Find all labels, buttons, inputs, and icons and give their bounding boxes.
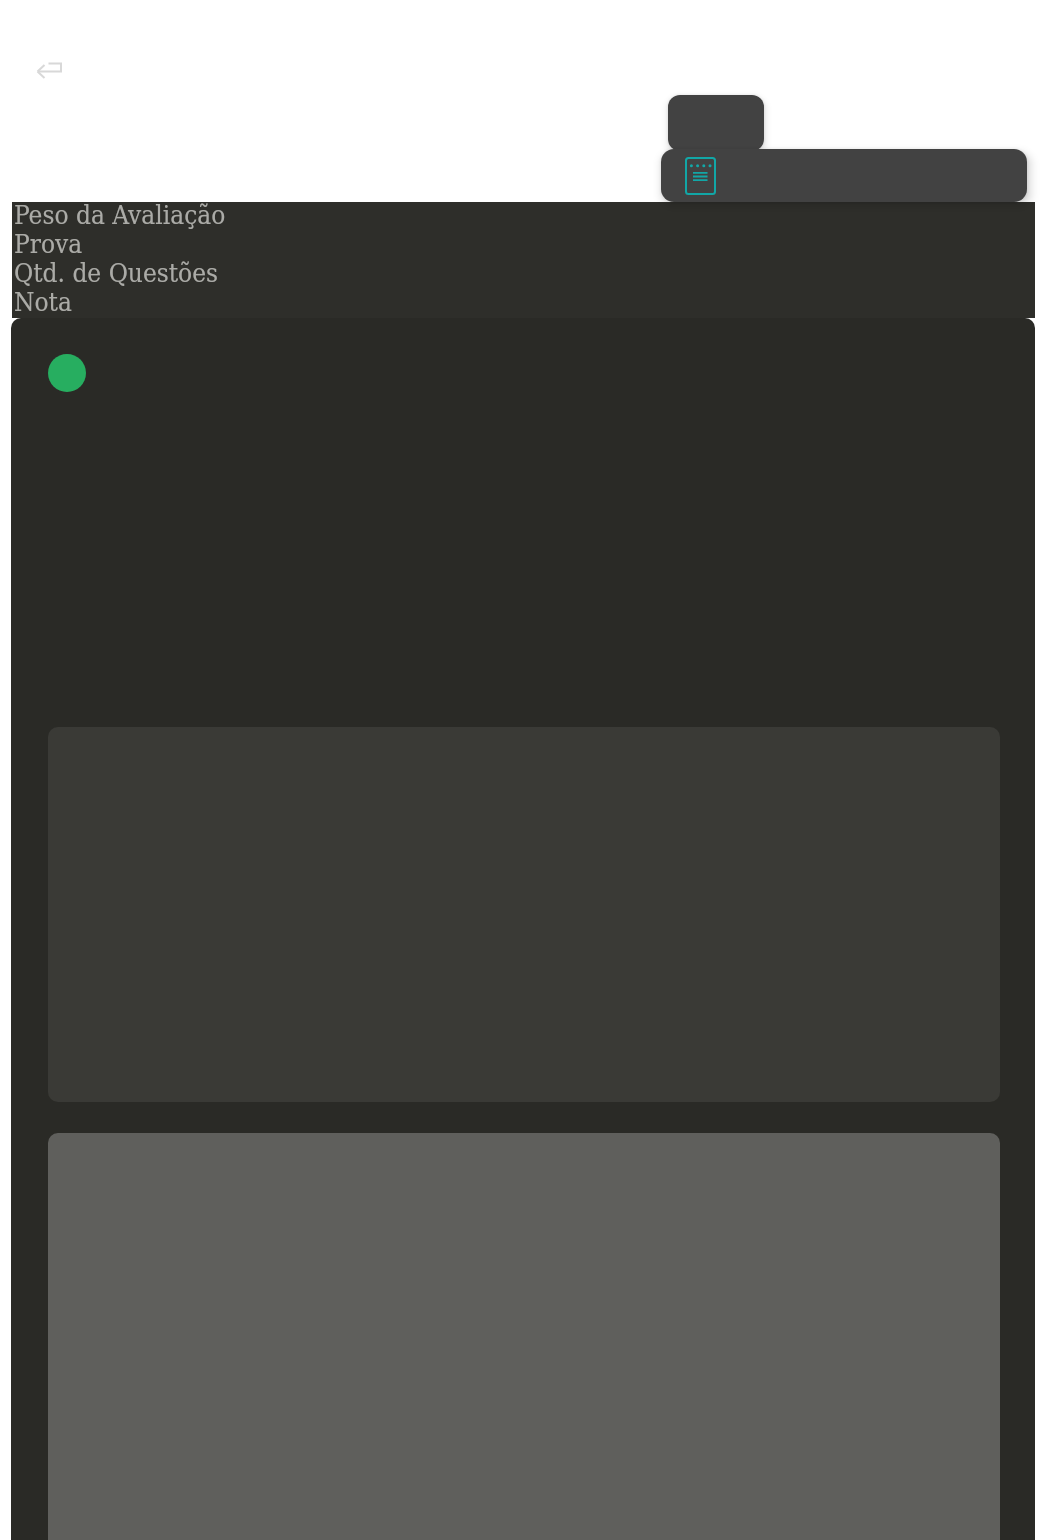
staticText: Qtd. de Questões (14, 258, 219, 288)
staticText: Prova (14, 229, 83, 259)
staticText: Peso da Avaliação (14, 200, 226, 230)
staticText: Nota (14, 287, 72, 317)
